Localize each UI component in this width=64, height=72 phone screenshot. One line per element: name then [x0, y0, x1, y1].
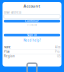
button[interactable]: Continue — [4, 20, 60, 22]
button[interactable]: Name — [4, 45, 60, 49]
staticText: Sign in — [27, 33, 37, 37]
staticText: Continue — [25, 19, 39, 23]
staticText: Region — [4, 54, 15, 58]
button[interactable]: Need help? — [23, 39, 40, 42]
staticText: US — [57, 54, 60, 58]
staticText: Need help? — [23, 39, 40, 42]
staticText: Email address — [4, 11, 21, 14]
staticText: Plan — [4, 50, 10, 53]
button[interactable]: Region — [4, 54, 60, 58]
staticText: Alex — [55, 45, 60, 49]
staticText: Account — [23, 3, 40, 9]
button[interactable]: Sign in — [4, 34, 60, 36]
staticText: or continue with — [27, 24, 37, 26]
staticText: Name — [4, 45, 11, 49]
button[interactable]: Plan — [4, 50, 60, 54]
staticText: Pro — [55, 50, 60, 53]
